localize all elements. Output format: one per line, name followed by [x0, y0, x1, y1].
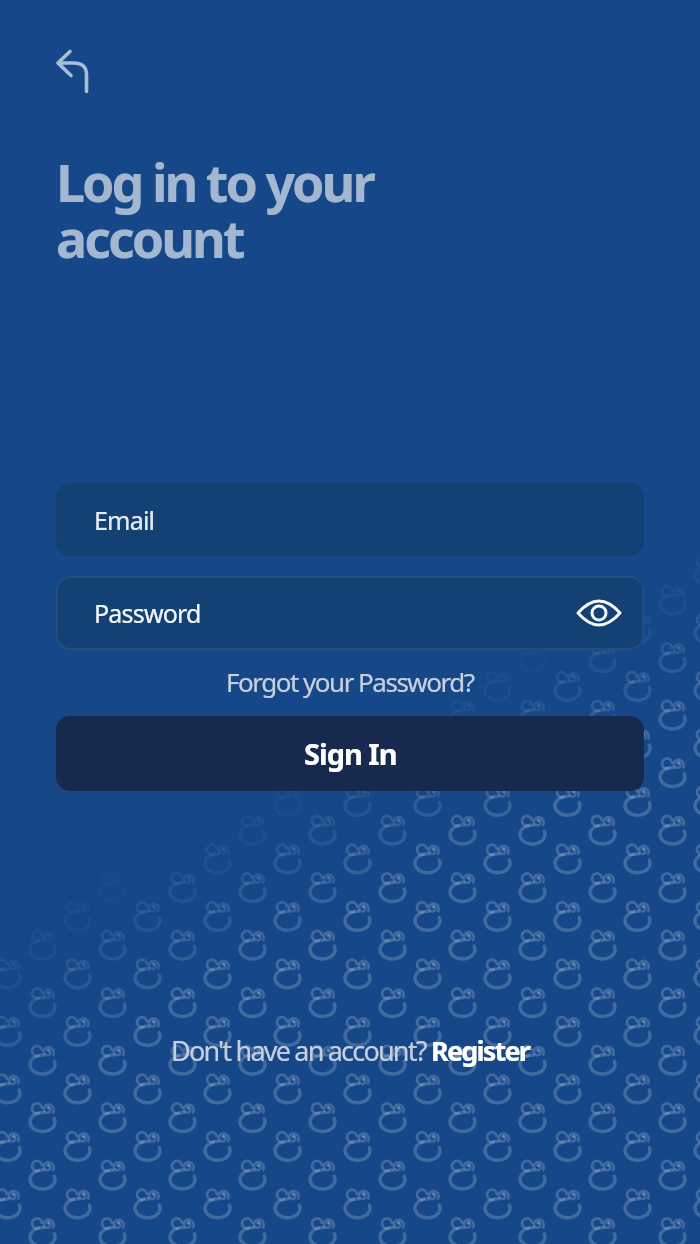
staticText: Password [94, 596, 201, 630]
button[interactable]: Sign In [56, 716, 644, 791]
button[interactable]: Password [56, 576, 644, 650]
staticText: Sign In [304, 734, 397, 773]
button[interactable]: Email [56, 483, 644, 556]
button[interactable] [44, 38, 100, 94]
staticText: Email [94, 503, 155, 537]
staticText: Log in to your [56, 146, 373, 217]
button[interactable]: Forgot your Password? [226, 664, 474, 699]
staticText: Register [431, 1032, 530, 1069]
button[interactable]: Don't have an account? [171, 1032, 530, 1069]
staticText: Don't have an account? [171, 1032, 431, 1069]
staticText: account [56, 202, 243, 273]
